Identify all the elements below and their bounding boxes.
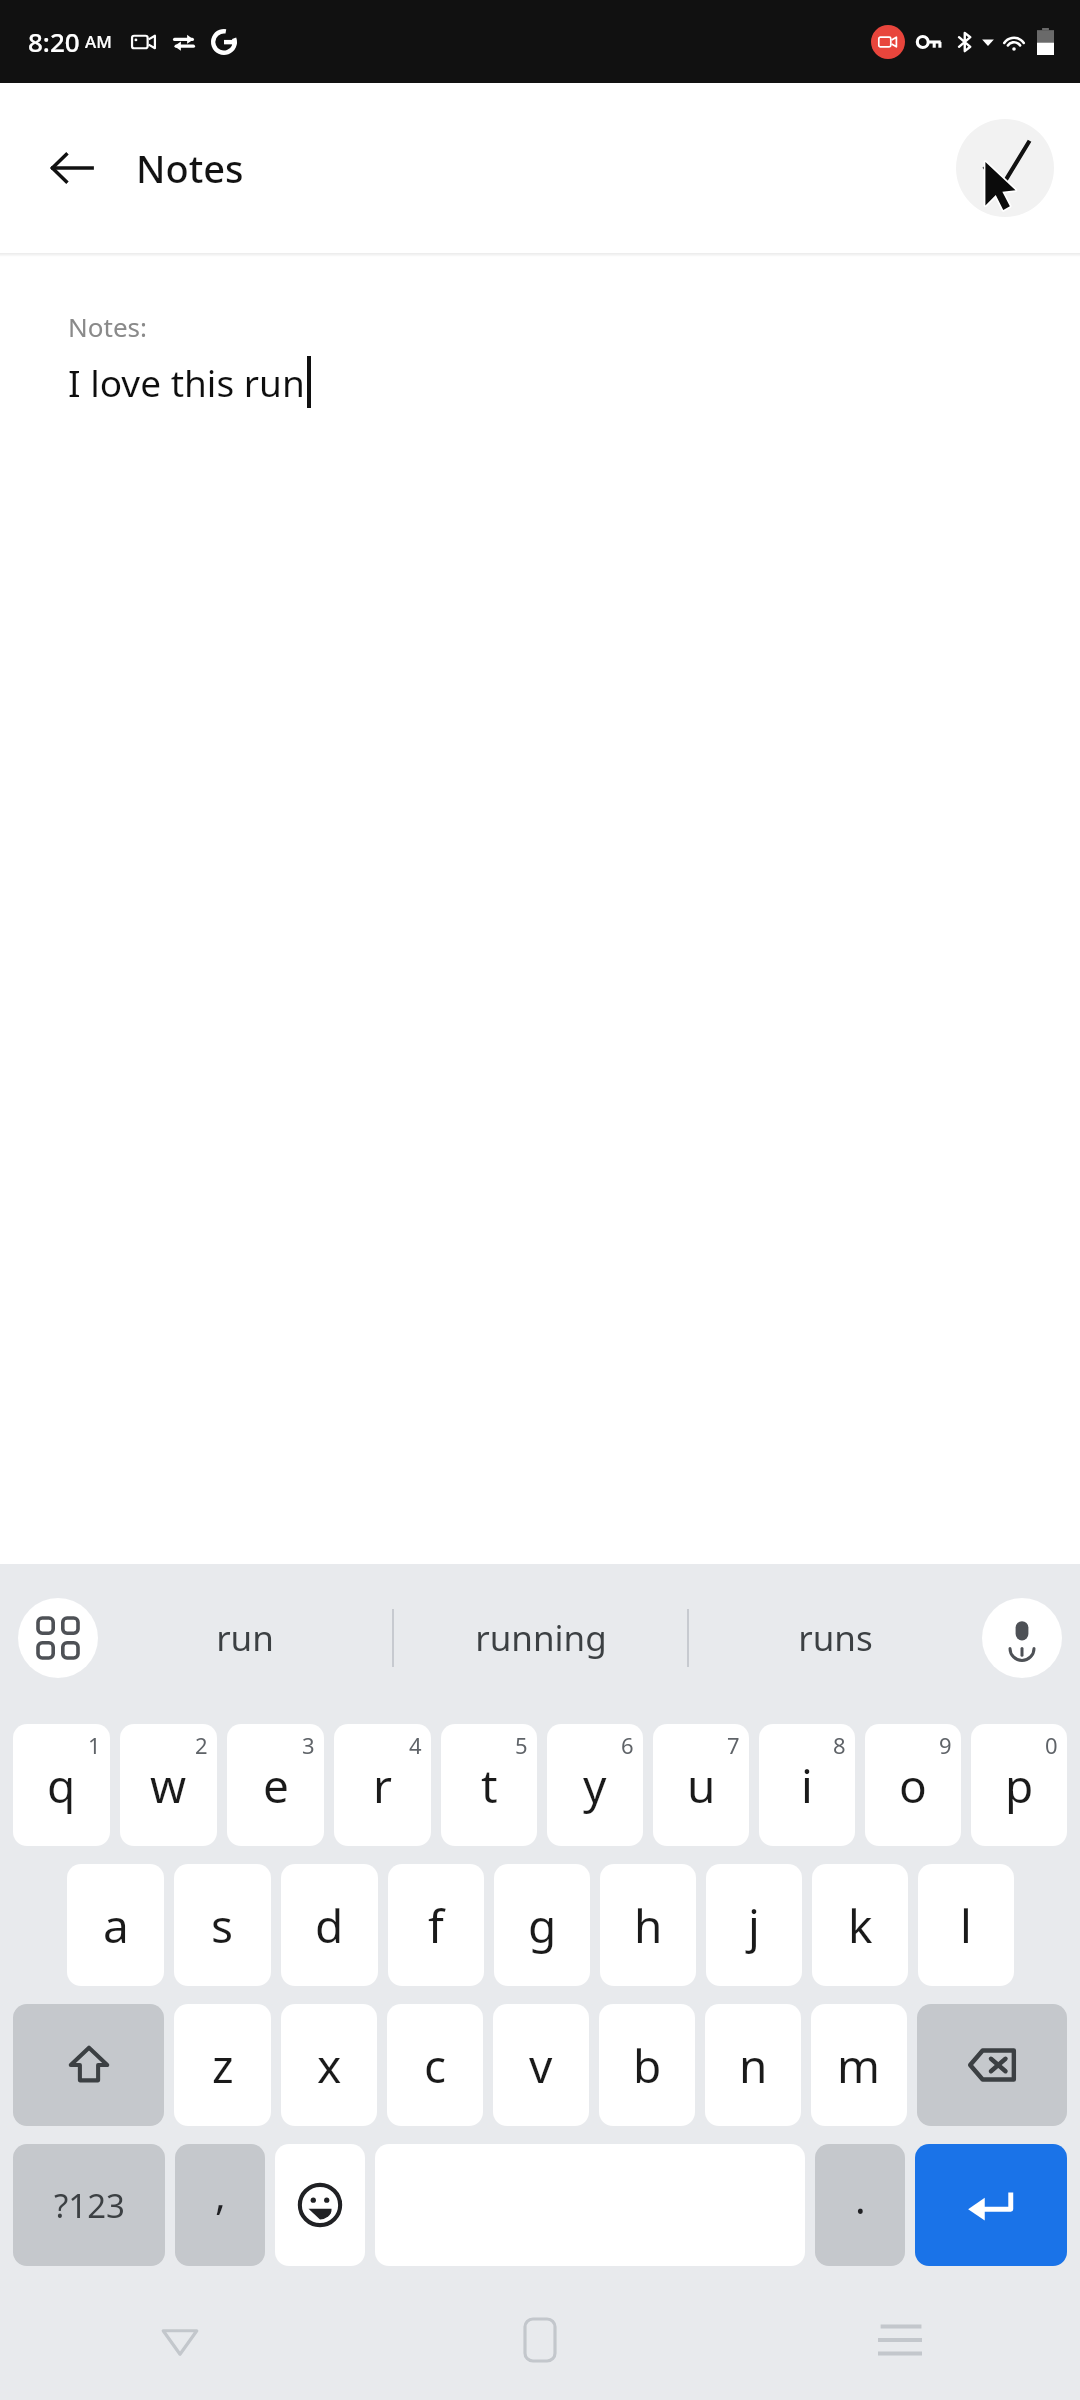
button[interactable]: Enter [915,2144,1067,2266]
staticText: v [529,2034,553,2097]
button[interactable]: b [599,2004,695,2126]
button[interactable]: running [394,1564,687,1712]
staticText: runs [798,1614,873,1662]
staticText: u [687,1754,716,1817]
button[interactable]: d [281,1864,378,1986]
staticText: Notes [136,142,244,194]
button[interactable]: ?123 [13,2144,165,2266]
staticText: run [216,1614,274,1662]
staticText: p [1005,1754,1034,1817]
staticText: 7 [727,1730,740,1760]
staticText: j [748,1894,760,1957]
button[interactable]: runs [689,1564,982,1712]
staticText: ?123 [54,2183,125,2228]
staticText: 9 [939,1730,952,1760]
staticText: l [960,1894,972,1957]
staticText: a [103,1894,129,1957]
staticText: 1 [88,1730,101,1760]
button[interactable]: Recent apps [720,2280,1080,2400]
button[interactable]: k [812,1864,908,1986]
staticText: t [481,1754,498,1817]
staticText: , [215,2167,226,2221]
staticText: g [528,1894,557,1957]
button[interactable]: j [706,1864,802,1986]
button[interactable]: o [865,1724,961,1846]
button[interactable]: Back [34,130,110,206]
button[interactable]: , [175,2144,265,2266]
staticText: c [424,2034,447,2097]
button[interactable]: Backspace [917,2004,1067,2126]
staticText: h [634,1894,663,1957]
staticText: i [801,1754,813,1817]
button[interactable]: h [600,1864,696,1986]
staticText: z [212,2034,234,2097]
staticText: 5 [515,1730,528,1760]
staticText: q [47,1754,76,1817]
button[interactable]: Shift [13,2004,164,2126]
button[interactable]: f [388,1864,484,1986]
button[interactable]: run [98,1564,392,1712]
button[interactable]: l [918,1864,1014,1986]
staticText: b [633,2034,662,2097]
button[interactable]: z [174,2004,271,2126]
staticText: r [373,1754,392,1817]
button[interactable]: m [811,2004,907,2126]
staticText: AM [85,30,112,53]
staticText: o [899,1754,927,1817]
staticText: 8 [833,1730,846,1760]
staticText: f [428,1894,444,1957]
staticText: Notes: [68,309,147,344]
button[interactable]: Home [360,2280,720,2400]
button[interactable]: Voice input [982,1598,1062,1678]
staticText: . [855,2171,866,2225]
button[interactable]: q [13,1724,110,1846]
staticText: y [583,1754,607,1817]
button[interactable]: c [387,2004,483,2126]
staticText: 8:20 [28,24,80,59]
staticText: k [848,1894,873,1957]
button[interactable]: . [815,2144,905,2266]
button[interactable]: y [547,1724,643,1846]
staticText: x [317,2034,342,2097]
button[interactable]: s [174,1864,271,1986]
button[interactable]: g [494,1864,590,1986]
button[interactable]: v [493,2004,589,2126]
staticText: w [150,1754,187,1817]
button[interactable]: p [971,1724,1067,1846]
button[interactable]: Save [956,119,1054,217]
staticText: 2 [195,1730,208,1760]
button[interactable]: Keyboard options [18,1598,98,1678]
button[interactable]: i [759,1724,855,1846]
staticText: m [837,2034,881,2097]
button[interactable]: w [120,1724,217,1846]
button[interactable]: n [705,2004,801,2126]
staticText: 3 [302,1730,315,1760]
staticText: s [211,1894,234,1957]
button[interactable]: e [227,1724,324,1846]
staticText: n [739,2034,768,2097]
button[interactable]: r [334,1724,431,1846]
staticText: I love this run [68,357,305,407]
button[interactable]: t [441,1724,537,1846]
button[interactable]: x [281,2004,377,2126]
staticText: d [315,1894,344,1957]
staticText: e [263,1754,289,1817]
staticText: running [475,1614,607,1662]
button[interactable]: Emoji [275,2144,365,2266]
button[interactable]: a [67,1864,164,1986]
button[interactable]: u [653,1724,749,1846]
staticText: 6 [621,1730,634,1760]
staticText: 0 [1045,1730,1058,1760]
staticText: 4 [409,1730,422,1760]
